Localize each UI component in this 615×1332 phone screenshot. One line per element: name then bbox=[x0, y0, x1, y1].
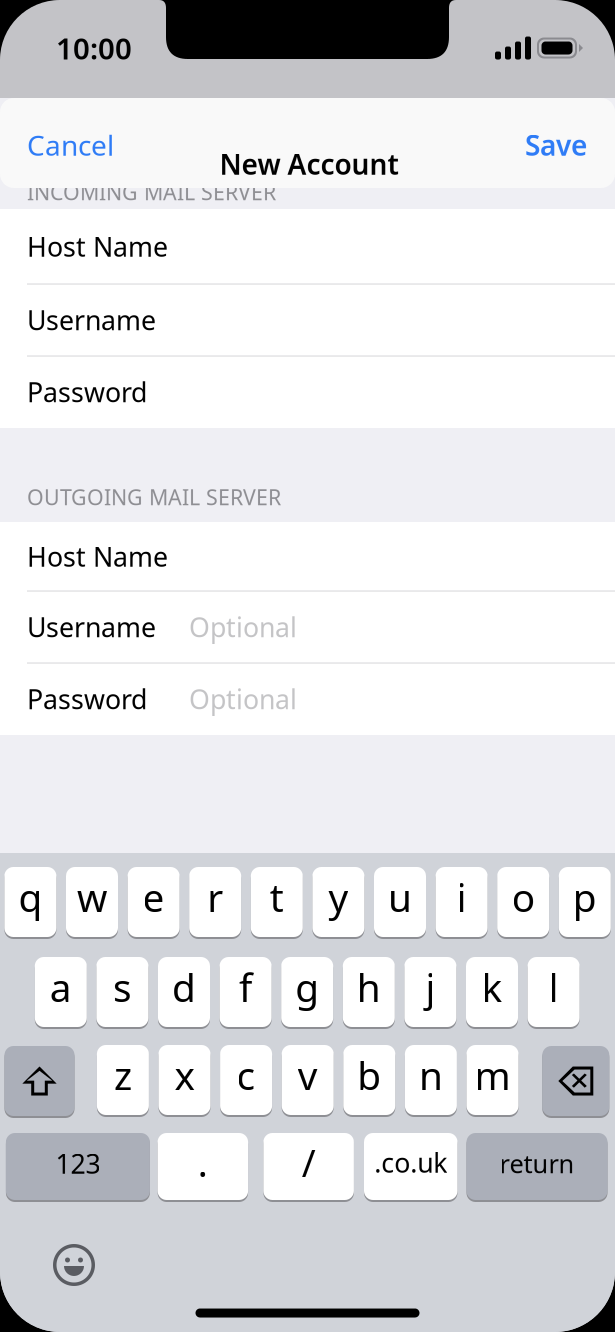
button[interactable]: Cancel bbox=[0, 111, 138, 179]
staticText: 10:00 bbox=[56, 28, 132, 67]
button[interactable]: w bbox=[66, 865, 118, 939]
button[interactable]: Username bbox=[0, 591, 615, 663]
button[interactable]: q bbox=[4, 865, 56, 939]
button[interactable]: e bbox=[128, 865, 180, 939]
staticText: w bbox=[77, 871, 107, 923]
button[interactable]: 123 bbox=[6, 1131, 150, 1202]
staticText: Host Name bbox=[27, 539, 168, 574]
staticText: Username bbox=[27, 302, 156, 338]
button[interactable]: n bbox=[405, 1043, 457, 1117]
button[interactable]: .co.uk bbox=[364, 1131, 457, 1202]
button[interactable]: s bbox=[96, 955, 148, 1029]
button[interactable]: o bbox=[497, 865, 549, 939]
button[interactable]: b bbox=[343, 1043, 395, 1117]
staticText: INCOMING MAIL SERVER bbox=[27, 178, 276, 206]
button[interactable]: m bbox=[466, 1043, 518, 1117]
button[interactable]: a bbox=[35, 955, 87, 1029]
staticText: New Account bbox=[219, 145, 398, 183]
staticText: . bbox=[198, 1138, 208, 1187]
button[interactable]: Save bbox=[497, 111, 615, 179]
button[interactable]: v bbox=[282, 1043, 334, 1117]
button[interactable]: k bbox=[466, 955, 518, 1029]
staticText: 123 bbox=[55, 1146, 100, 1181]
button[interactable]: c bbox=[220, 1043, 272, 1117]
staticText: g bbox=[295, 961, 319, 1013]
button[interactable]: Host Name bbox=[0, 522, 615, 591]
button[interactable]: Password bbox=[0, 663, 615, 735]
button[interactable]: j bbox=[404, 955, 456, 1029]
staticText: Cancel bbox=[27, 126, 114, 164]
staticText: / bbox=[302, 1138, 316, 1187]
staticText: l bbox=[549, 961, 559, 1013]
button[interactable]: Username bbox=[0, 284, 615, 356]
staticText: Password bbox=[27, 681, 147, 717]
button[interactable]: return bbox=[466, 1131, 607, 1202]
staticText: f bbox=[239, 961, 252, 1013]
button[interactable]: Emoji keyboard bbox=[51, 1242, 97, 1288]
staticText: m bbox=[474, 1049, 510, 1101]
button[interactable]: i bbox=[436, 865, 488, 939]
staticText: a bbox=[50, 961, 72, 1013]
button[interactable]: Password bbox=[0, 356, 615, 428]
button[interactable]: d bbox=[158, 955, 210, 1029]
staticText: q bbox=[18, 871, 42, 923]
staticText: e bbox=[143, 871, 165, 923]
staticText: Username bbox=[27, 609, 156, 645]
button[interactable]: Delete bbox=[542, 1044, 609, 1118]
button[interactable]: h bbox=[343, 955, 395, 1029]
button[interactable]: / bbox=[263, 1131, 354, 1202]
staticText: i bbox=[457, 871, 467, 923]
button[interactable]: z bbox=[97, 1043, 149, 1117]
button[interactable]: x bbox=[158, 1043, 210, 1117]
staticText: Optional bbox=[189, 681, 297, 717]
button[interactable]: . bbox=[158, 1131, 248, 1202]
staticText: t bbox=[270, 871, 284, 923]
staticText: c bbox=[237, 1049, 256, 1101]
staticText: .co.uk bbox=[374, 1145, 447, 1180]
button[interactable]: Shift bbox=[4, 1044, 74, 1118]
staticText: return bbox=[499, 1147, 574, 1180]
staticText: Host Name bbox=[27, 229, 168, 264]
button[interactable]: p bbox=[559, 865, 611, 939]
staticText: v bbox=[298, 1049, 318, 1101]
staticText: Optional bbox=[189, 609, 297, 645]
staticText: s bbox=[113, 961, 132, 1013]
button[interactable]: t bbox=[251, 865, 303, 939]
button[interactable]: Host Name bbox=[0, 209, 615, 284]
staticText: r bbox=[207, 871, 223, 923]
staticText: k bbox=[481, 961, 502, 1013]
button[interactable]: u bbox=[374, 865, 426, 939]
staticText: Save bbox=[525, 126, 587, 164]
staticText: p bbox=[573, 871, 597, 923]
button[interactable]: f bbox=[220, 955, 272, 1029]
staticText: z bbox=[114, 1049, 132, 1101]
staticText: OUTGOING MAIL SERVER bbox=[27, 483, 281, 511]
staticText: Password bbox=[27, 374, 147, 410]
button[interactable]: g bbox=[281, 955, 333, 1029]
staticText: h bbox=[357, 961, 381, 1013]
staticText: y bbox=[328, 871, 348, 923]
button[interactable]: y bbox=[312, 865, 364, 939]
staticText: n bbox=[419, 1049, 443, 1101]
staticText: d bbox=[172, 961, 196, 1013]
button[interactable]: l bbox=[528, 955, 580, 1029]
staticText: u bbox=[388, 871, 412, 923]
staticText: x bbox=[174, 1049, 194, 1101]
staticText: o bbox=[512, 871, 535, 923]
staticText: j bbox=[425, 961, 435, 1013]
staticText: b bbox=[357, 1049, 381, 1101]
button[interactable]: r bbox=[189, 865, 241, 939]
